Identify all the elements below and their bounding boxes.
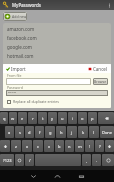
- staticText: c: [37, 144, 39, 149]
- staticText: d: [28, 130, 31, 135]
- button[interactable]: n: [65, 140, 74, 152]
- staticText: ,: [86, 158, 88, 163]
- staticText: hotmail.com: [7, 53, 34, 59]
- button[interactable]: Recents: [75, 170, 87, 182]
- staticText: Browse: [94, 79, 107, 84]
- button[interactable]: d: [25, 126, 34, 138]
- button[interactable]: c: [33, 140, 43, 152]
- button[interactable]: Backspace: [98, 112, 114, 124]
- button[interactable]: [6, 78, 91, 85]
- button[interactable]: p: [88, 112, 97, 124]
- staticText: From file: [7, 73, 22, 78]
- button[interactable]: a: [5, 126, 14, 138]
- button[interactable]: hotmail.com: [3, 51, 111, 60]
- staticText: h: [60, 130, 63, 135]
- staticText: google.com: [7, 44, 32, 50]
- staticText: j: [71, 130, 73, 135]
- button[interactable]: Browse: [93, 78, 108, 85]
- staticText: s: [19, 130, 21, 135]
- button[interactable]: amazon.com: [3, 24, 111, 33]
- staticText: v: [48, 144, 51, 149]
- button[interactable]: i: [68, 112, 77, 124]
- button[interactable]: google.com: [3, 42, 111, 51]
- button[interactable]: e: [18, 112, 27, 124]
- button[interactable]: Replace all duplicate entries: [7, 99, 59, 104]
- button[interactable]: r: [28, 112, 37, 124]
- button[interactable]: l: [89, 126, 99, 138]
- button[interactable]: t: [38, 112, 47, 124]
- button[interactable]: Space: [35, 154, 81, 166]
- button[interactable]: z: [11, 140, 21, 152]
- button[interactable]: •••••••: [6, 90, 108, 96]
- staticText: Done: [102, 130, 113, 135]
- button[interactable]: .: [92, 154, 101, 166]
- button[interactable]: /: [25, 154, 34, 166]
- button[interactable]: s: [15, 126, 24, 138]
- button[interactable]: Shift: [0, 140, 10, 152]
- button[interactable]: v: [44, 140, 54, 152]
- staticText: !: [89, 144, 91, 149]
- staticText: Cancel: [93, 66, 108, 72]
- button[interactable]: o: [78, 112, 87, 124]
- staticText: z: [15, 144, 17, 149]
- button[interactable]: g: [45, 126, 55, 138]
- staticText: t: [42, 116, 44, 121]
- button[interactable]: ?: [95, 140, 104, 152]
- button[interactable]: facebook.com: [3, 33, 111, 42]
- button[interactable]: Shift: [105, 140, 114, 152]
- button[interactable]: !: [85, 140, 94, 152]
- staticText: Add new: [12, 14, 27, 19]
- button[interactable]: x: [22, 140, 32, 152]
- button[interactable]: ?123: [0, 154, 14, 166]
- staticText: facebook.com: [7, 35, 37, 41]
- staticText: w: [11, 116, 15, 121]
- staticText: k: [82, 130, 85, 135]
- staticText: q: [3, 116, 6, 121]
- button[interactable]: Back: [27, 170, 39, 182]
- staticText: e: [21, 116, 24, 121]
- staticText: b: [58, 144, 61, 149]
- staticText: p: [91, 116, 94, 121]
- staticText: u: [61, 116, 64, 121]
- staticText: g: [49, 130, 52, 135]
- staticText: Replace all duplicate entries: [13, 99, 59, 104]
- button[interactable]: f: [35, 126, 44, 138]
- button[interactable]: m: [75, 140, 84, 152]
- staticText: .: [96, 158, 98, 163]
- staticText: l: [93, 130, 95, 135]
- button[interactable]: j: [67, 126, 77, 138]
- staticText: ?: [99, 144, 101, 149]
- staticText: m: [78, 144, 82, 149]
- staticText: /: [29, 158, 31, 163]
- staticText: Password: [7, 85, 23, 90]
- button[interactable]: Settings: [15, 154, 24, 166]
- staticText: MyPasswords: [12, 2, 41, 8]
- staticText: Import: [11, 66, 26, 72]
- button[interactable]: k: [78, 126, 88, 138]
- button[interactable]: y: [48, 112, 57, 124]
- staticText: y: [51, 116, 54, 121]
- button[interactable]: MyPasswords: [0, 0, 114, 10]
- button[interactable]: More options: [104, 0, 114, 10]
- button[interactable]: Emoji: [102, 154, 114, 166]
- button[interactable]: Home: [51, 170, 63, 182]
- button[interactable]: Add new: [3, 12, 27, 21]
- staticText: a: [8, 130, 11, 135]
- button[interactable]: h: [56, 126, 66, 138]
- staticText: n: [68, 144, 71, 149]
- staticText: f: [39, 130, 41, 135]
- button[interactable]: u: [58, 112, 67, 124]
- button[interactable]: ,: [82, 154, 91, 166]
- button[interactable]: q: [0, 112, 8, 124]
- staticText: o: [81, 116, 84, 121]
- staticText: r: [32, 116, 34, 121]
- staticText: ?123: [3, 158, 12, 163]
- staticText: •••••••: [8, 91, 16, 95]
- button[interactable]: Done: [100, 126, 114, 138]
- staticText: amazon.com: [7, 26, 35, 32]
- button[interactable]: b: [55, 140, 64, 152]
- staticText: x: [26, 144, 29, 149]
- button[interactable]: w: [9, 112, 17, 124]
- staticText: i: [72, 116, 74, 121]
